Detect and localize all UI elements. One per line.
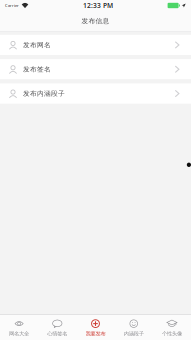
- button[interactable]: 内涵段子: [115, 315, 153, 340]
- staticText: 发布内涵段子: [23, 89, 65, 98]
- staticText: Carrier: [5, 3, 19, 8]
- staticText: 个性头像: [162, 330, 182, 337]
- staticText: 发布签名: [23, 65, 51, 73]
- button[interactable]: 发布网名: [0, 35, 191, 55]
- button[interactable]: 我要发布: [76, 315, 115, 340]
- staticText: 心情签名: [47, 330, 67, 337]
- button[interactable]: 发布内涵段子: [0, 83, 191, 104]
- button[interactable]: 心情签名: [38, 315, 76, 340]
- staticText: 12:33 PM: [83, 1, 113, 10]
- staticText: 发布网名: [23, 41, 51, 49]
- staticText: 内涵段子: [124, 330, 144, 337]
- staticText: 网名大全: [9, 330, 29, 337]
- button[interactable]: 个性头像: [153, 315, 191, 340]
- staticText: 发布信息: [81, 17, 109, 25]
- button[interactable]: 网名大全: [0, 315, 38, 340]
- staticText: 我要发布: [85, 330, 105, 337]
- button[interactable]: 发布签名: [0, 59, 191, 79]
